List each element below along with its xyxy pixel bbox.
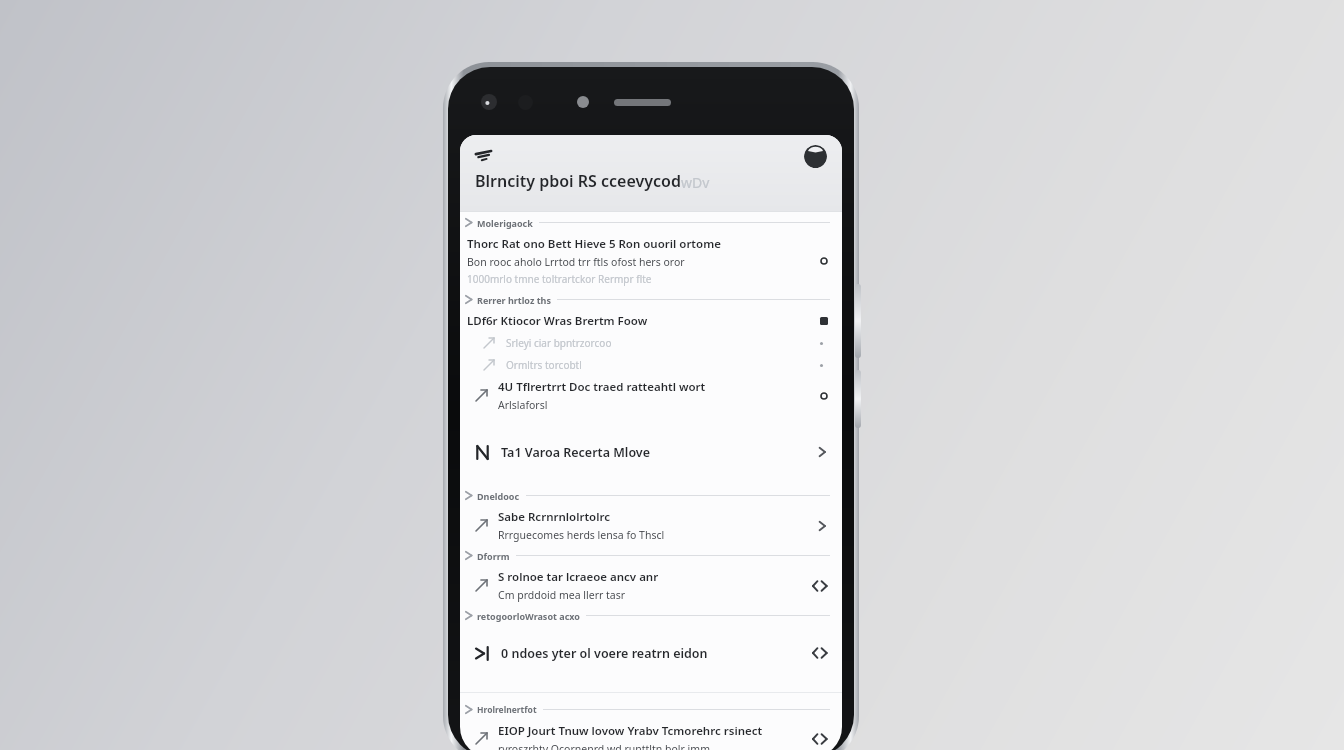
staticText: LDf6r Ktiocor Wras Brertm Foow — [467, 313, 648, 329]
other: Open — [816, 520, 828, 532]
other: Expand — [812, 731, 828, 747]
staticText: Bon rooc aholo Lrrtod trr ftls ofost her… — [467, 255, 685, 269]
staticText: EIOP Jourt Tnuw lovow Yrabv Tcmorehrc rs… — [498, 723, 763, 739]
button[interactable]: Sabe Rcrnrnlolrtolrc — [460, 506, 842, 545]
button[interactable]: Thorc Rat ono Bett Hieve 5 Ron ouoril or… — [460, 233, 842, 289]
staticText: Ta1 Varoa Recerta Mlove — [501, 444, 816, 461]
button[interactable]: Ta1 Varoa Recerta Mlove — [460, 435, 842, 469]
staticText: 0 ndoes yter ol voere reatrn eidon — [501, 645, 812, 662]
button[interactable]: Power — [855, 370, 861, 428]
staticText: Cm prddoid mea llerr tasr — [498, 588, 626, 602]
button[interactable]: retogoorloWrasot acxo — [460, 605, 842, 626]
staticText: Hrolrelnertfot — [477, 704, 537, 716]
other: Expand — [812, 645, 828, 661]
other: Expand — [812, 578, 828, 594]
staticText: Rrrguecomes herds lensa fo Thscl — [498, 528, 665, 542]
staticText: 1000mrlo tmne toltrartckor Rermpr flte — [467, 272, 652, 286]
staticText: S rolnoe tar lcraeoe ancv anr — [498, 569, 659, 585]
button[interactable]: 0 ndoes yter ol voere reatrn eidon — [460, 636, 842, 670]
staticText: ryroszrhty Ocornenrd wd runttltn bolr jm… — [498, 742, 710, 750]
staticText: Ormltrs torcobtl — [506, 358, 582, 372]
button[interactable]: Rerrer hrtloz ths — [460, 289, 842, 310]
other: Select — [820, 317, 828, 325]
staticText: retogoorloWrasot acxo — [477, 610, 580, 622]
staticText: wDv — [681, 173, 710, 192]
button[interactable]: Dneldooc — [460, 485, 842, 506]
button[interactable]: EIOP Jourt Tnuw lovow Yrabv Tcmorehrc rs… — [460, 720, 842, 750]
staticText: Srleyi ciar bpntrzorcoo — [506, 336, 612, 350]
staticText: Dforrm — [477, 550, 510, 562]
button[interactable]: Dforrm — [460, 545, 842, 566]
button[interactable]: Srleyi ciar bpntrzorcoo — [460, 332, 842, 354]
button[interactable]: Volume — [855, 284, 861, 358]
button[interactable]: LDf6r Ktiocor Wras Brertm Foow — [460, 310, 842, 332]
staticText: 4U Tflrertrrt Doc traed ratteahtl wort — [498, 379, 706, 395]
staticText: Blrncity pboi RS cceevycod — [475, 170, 681, 192]
staticText: Arlslaforsl — [498, 398, 548, 412]
staticText: Thorc Rat ono Bett Hieve 5 Ron ouoril or… — [467, 236, 721, 252]
staticText: Molerigaock — [477, 217, 533, 229]
button[interactable]: Molerigaock — [460, 212, 842, 233]
button[interactable]: Ormltrs torcobtl — [460, 354, 842, 376]
other: Toggle — [820, 257, 828, 265]
staticText: Rerrer hrtloz ths — [477, 294, 551, 306]
button[interactable]: Account — [804, 145, 827, 168]
button[interactable]: Hrolrelnertfot — [460, 699, 842, 720]
other: Toggle — [820, 392, 828, 400]
staticText: Sabe Rcrnrnlolrtolrc — [498, 509, 610, 525]
button[interactable]: 4U Tflrertrrt Doc traed ratteahtl wort — [460, 376, 842, 415]
button[interactable]: S rolnoe tar lcraeoe ancv anr — [460, 566, 842, 605]
button[interactable]: Network — [475, 147, 492, 164]
staticText: Dneldooc — [477, 490, 520, 502]
other: Open — [816, 446, 828, 458]
